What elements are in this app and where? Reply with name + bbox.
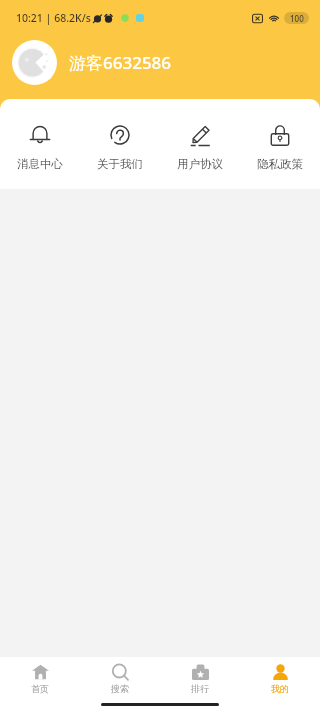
staticText: 我的 bbox=[271, 683, 289, 694]
button[interactable]: 排行 bbox=[160, 664, 240, 694]
staticText: 排行 bbox=[191, 683, 209, 694]
button[interactable]: 我的 bbox=[240, 664, 320, 694]
staticText: 用户协议 bbox=[177, 157, 223, 171]
staticText: 游客6632586 bbox=[69, 51, 172, 74]
staticText: 关于我们 bbox=[97, 157, 143, 171]
button[interactable]: 搜索 bbox=[80, 664, 160, 694]
button[interactable]: Profile avatar bbox=[12, 40, 57, 85]
staticText: 隐私政策 bbox=[257, 157, 303, 171]
staticText: 搜索 bbox=[111, 683, 129, 694]
button[interactable]: 关于我们 bbox=[80, 99, 160, 171]
staticText: 100 bbox=[290, 13, 304, 24]
button[interactable]: 用户协议 bbox=[160, 99, 240, 171]
staticText: 首页 bbox=[31, 683, 49, 694]
button[interactable]: 消息中心 bbox=[0, 99, 80, 171]
button[interactable]: 隐私政策 bbox=[240, 99, 320, 171]
staticText: 消息中心 bbox=[17, 157, 63, 171]
staticText: 10:21 | 68.2K/s bbox=[16, 11, 91, 25]
button[interactable]: 首页 bbox=[0, 664, 80, 694]
